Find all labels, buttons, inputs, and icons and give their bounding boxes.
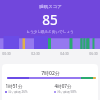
staticText: 1時51分: [5, 83, 23, 89]
staticText: 睡眠スコア: [39, 4, 62, 10]
button[interactable]: 4時07分: [54, 83, 77, 94]
button[interactable]: 7時02分: [2, 64, 98, 100]
staticText: 85: [42, 11, 58, 29]
staticText: もう少し眠ると良いでしょう: [26, 30, 74, 35]
staticText: 4時07分: [54, 83, 72, 89]
staticText: 04:30: [60, 51, 69, 55]
staticText: 02:30: [31, 51, 40, 55]
staticText: 7時02分: [41, 70, 60, 77]
staticText: 00:30: [2, 51, 11, 55]
staticText: 浅い睡眠 58%: [57, 90, 77, 94]
staticText: 深い睡眠 26%: [8, 90, 28, 94]
staticText: 06:30: [89, 51, 98, 55]
button[interactable]: 1時51分: [5, 83, 28, 94]
